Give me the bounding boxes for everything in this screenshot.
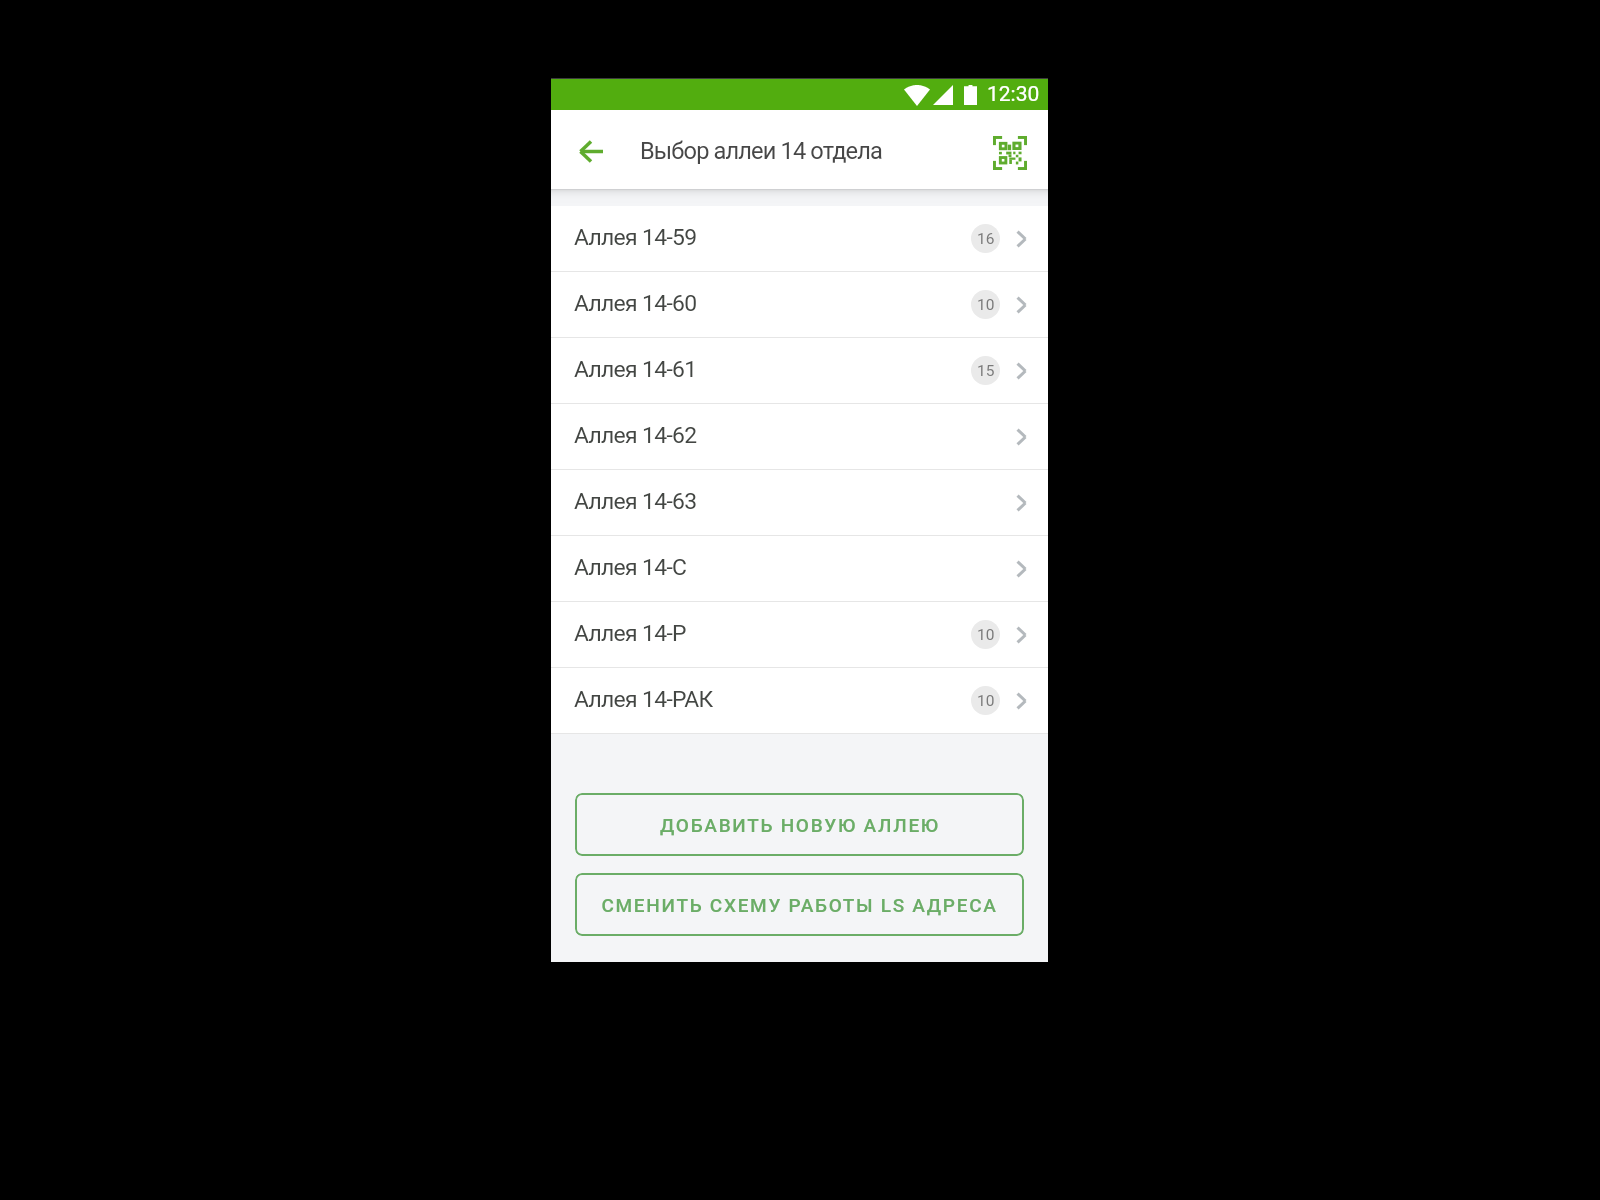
button[interactable]: Аллея 14-Р	[551, 602, 1048, 667]
staticText: Аллея 14-62	[574, 422, 697, 449]
button[interactable]: Аллея 14-62	[551, 404, 1048, 469]
staticText: СМЕНИТЬ СХЕМУ РАБОТЫ LS АДРЕСА	[601, 894, 998, 916]
button[interactable]: Аллея 14-61	[551, 338, 1048, 403]
staticText: Выбор аллеи 14 отдела	[640, 137, 883, 165]
button[interactable]: Back	[567, 126, 615, 174]
button[interactable]: Аллея 14-РАК	[551, 668, 1048, 733]
staticText: Аллея 14-60	[574, 290, 697, 317]
staticText: 10	[977, 692, 995, 710]
staticText: Аллея 14-61	[574, 356, 697, 383]
staticText: 16	[977, 230, 995, 248]
staticText: Аллея 14-РАК	[574, 686, 713, 713]
button[interactable]: СМЕНИТЬ СХЕМУ РАБОТЫ LS АДРЕСА	[575, 873, 1024, 936]
staticText: 10	[977, 626, 995, 644]
button[interactable]: Scan QR code	[986, 126, 1034, 174]
button[interactable]: Аллея 14-59	[551, 206, 1048, 271]
staticText: Аллея 14-Р	[574, 620, 686, 647]
staticText: 10	[977, 296, 995, 314]
button[interactable]: Аллея 14-60	[551, 272, 1048, 337]
button[interactable]: ДОБАВИТЬ НОВУЮ АЛЛЕЮ	[575, 793, 1024, 856]
staticText: Аллея 14-63	[574, 488, 697, 515]
staticText: 15	[977, 362, 995, 380]
button[interactable]: Аллея 14-63	[551, 470, 1048, 535]
staticText: Аллея 14-С	[574, 554, 687, 581]
button[interactable]: Аллея 14-С	[551, 536, 1048, 601]
staticText: Аллея 14-59	[574, 224, 697, 251]
staticText: ДОБАВИТЬ НОВУЮ АЛЛЕЮ	[660, 814, 940, 836]
staticText: 12:30	[987, 82, 1040, 107]
